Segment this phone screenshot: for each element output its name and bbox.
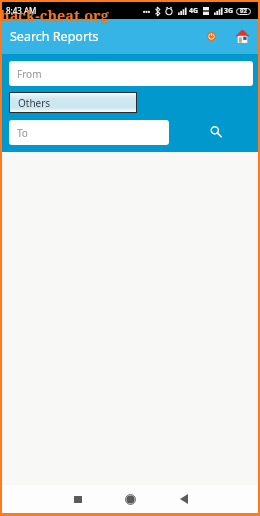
button[interactable]: Recents (63, 485, 92, 513)
button[interactable]: Home (230, 24, 254, 48)
button[interactable]: Refresh (199, 24, 223, 48)
button[interactable]: Search (203, 119, 229, 145)
button[interactable]: Others (10, 93, 136, 112)
staticText: Others (18, 96, 51, 110)
staticText: hack-cheat.org (0, 5, 109, 25)
staticText: 8:43 AM (6, 5, 37, 16)
staticText: 92 (240, 7, 247, 15)
button[interactable]: To (9, 120, 169, 145)
button[interactable]: Home (116, 485, 145, 513)
button[interactable]: From (9, 61, 253, 86)
button[interactable]: Back (169, 485, 198, 513)
staticText: 3G (224, 6, 234, 16)
staticText: From (17, 67, 42, 81)
staticText: To (17, 126, 28, 140)
staticText: 4G (189, 6, 199, 16)
staticText: Search Reports (10, 28, 99, 45)
